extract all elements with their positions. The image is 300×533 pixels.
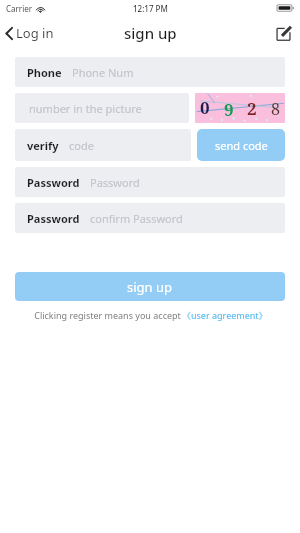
button[interactable]: Password (15, 167, 285, 197)
staticText: code (69, 138, 94, 153)
staticText: send code (215, 138, 268, 153)
staticText: Password (90, 175, 140, 190)
button[interactable]: number in the picture (15, 93, 189, 123)
staticText: number in the picture (29, 101, 142, 116)
button[interactable]: Phone (15, 57, 285, 87)
button[interactable]: Log in (0, 20, 62, 46)
staticText: Clicking register means you accept (33, 309, 182, 321)
staticText: sign up (127, 278, 173, 296)
staticText: confirm Password (90, 211, 183, 226)
staticText: verify (27, 138, 59, 153)
staticText: Password (27, 175, 80, 190)
staticText: Phone Num (72, 65, 134, 80)
staticText: Password (27, 211, 80, 226)
staticText: Log in (16, 24, 54, 42)
button[interactable]: send code (197, 129, 285, 161)
staticText: 2 (247, 97, 257, 120)
button[interactable]: sign up (15, 272, 285, 301)
staticText: 《user agreement》 (182, 309, 268, 321)
staticText: Carrier (6, 3, 33, 14)
button[interactable]: 《user agreement》 (182, 309, 268, 321)
staticText: 9 (224, 98, 234, 121)
button[interactable]: Compose (271, 21, 296, 46)
button[interactable]: Captcha image, tap to refresh (195, 93, 285, 123)
staticText: 12:17 PM (133, 3, 168, 14)
staticText: Phone (27, 65, 62, 80)
staticText: 8 (271, 98, 280, 120)
button[interactable]: Password (15, 203, 285, 233)
staticText: sign up (124, 23, 177, 43)
staticText: 0 (200, 96, 210, 119)
button[interactable]: verify (15, 129, 191, 161)
